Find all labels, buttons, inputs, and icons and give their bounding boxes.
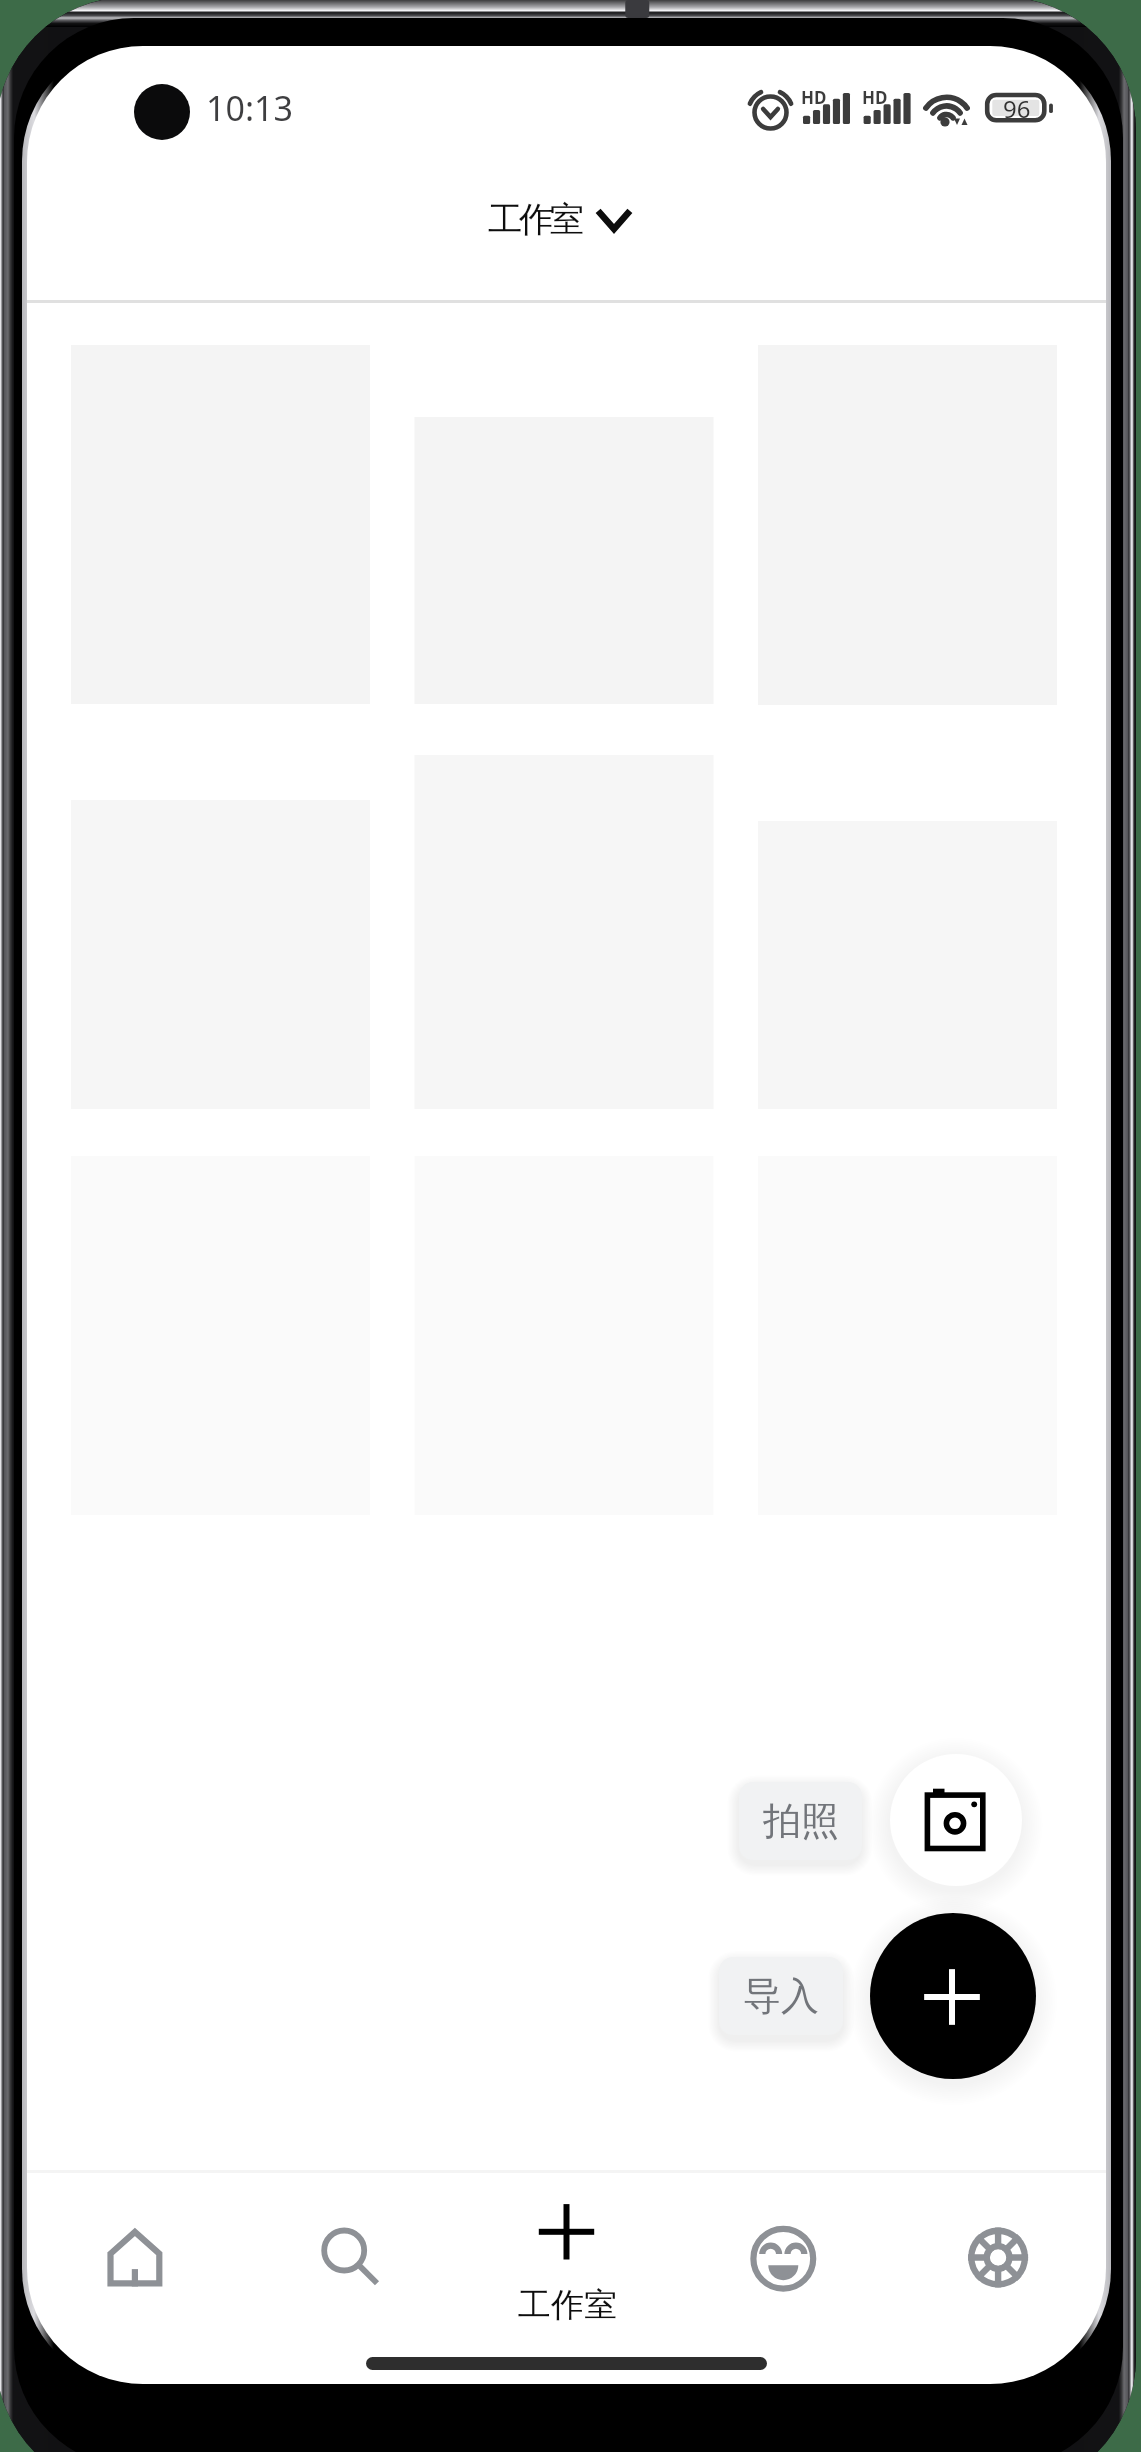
button[interactable]: 搜索 <box>243 2170 459 2375</box>
button[interactable]: 拍照 <box>739 1782 862 1860</box>
staticText: HD <box>862 86 888 109</box>
staticText: 工作室 <box>488 198 581 241</box>
staticText: 拍照 <box>763 1797 839 1845</box>
button[interactable]: 导入 <box>719 1957 843 2035</box>
button[interactable]: 首页 <box>27 2170 243 2375</box>
button[interactable]: 工作室 <box>459 2170 675 2375</box>
staticText: 工作室 <box>518 2284 617 2326</box>
staticText: 导入 <box>743 1972 819 2020</box>
staticText: 96 <box>1003 92 1031 125</box>
button[interactable]: 拍照 <box>890 1754 1022 1886</box>
staticText: 10:13 <box>206 85 293 131</box>
staticText: HD <box>801 86 827 109</box>
button[interactable]: 我的 <box>890 2170 1106 2375</box>
button[interactable]: 工作室 <box>464 184 655 255</box>
button[interactable]: 表情 <box>674 2170 890 2375</box>
button[interactable]: 添加 <box>870 1913 1036 2079</box>
